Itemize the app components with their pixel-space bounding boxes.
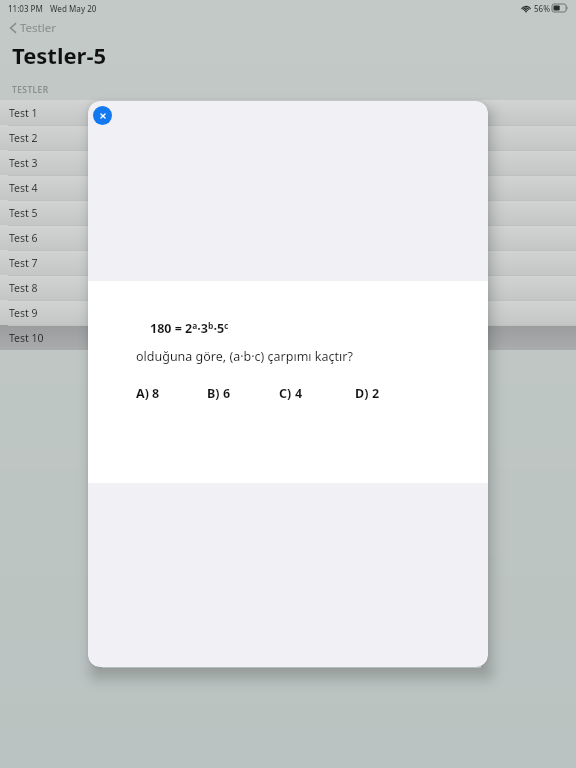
button[interactable]: Close [93, 106, 112, 125]
staticText: A) [136, 385, 149, 402]
staticText: 56% [534, 3, 550, 14]
staticText: Testler [20, 20, 56, 36]
staticText: Test 6 [9, 231, 38, 245]
button[interactable]: Test 3 [0, 150, 576, 175]
staticText: Test 10 [9, 331, 44, 345]
button[interactable]: Testler [6, 17, 56, 39]
button[interactable]: C) [279, 385, 303, 402]
button[interactable]: Test 2 [0, 125, 576, 150]
staticText: Test 7 [9, 256, 38, 270]
staticText: C) [279, 385, 292, 402]
button[interactable]: Test 7 [0, 250, 576, 275]
staticText: TESTLER [12, 84, 49, 96]
button[interactable]: Test 8 [0, 275, 576, 300]
staticText: Wed May 20 [50, 3, 97, 14]
button[interactable]: Test 6 [0, 225, 576, 250]
staticText: Test 9 [9, 306, 38, 320]
staticText: Test 3 [9, 156, 38, 170]
staticText: Test 2 [9, 131, 38, 145]
staticText: Test 8 [9, 281, 38, 295]
staticText: 180 = 2a·3b·5c [150, 320, 229, 337]
staticText: olduğuna göre, (a·b·c) çarpımı kaçtır? [136, 348, 353, 365]
staticText: 4 [295, 385, 303, 402]
staticText: 6 [223, 385, 231, 402]
staticText: Testler-5 [12, 40, 107, 70]
button[interactable]: D) [355, 385, 380, 402]
button[interactable]: Test 5 [0, 200, 576, 225]
staticText: Test 4 [9, 181, 38, 195]
button[interactable]: Test 10 [0, 325, 576, 350]
button[interactable]: B) [207, 385, 231, 402]
staticText: 11:03 PM [8, 3, 43, 14]
staticText: Test 5 [9, 206, 38, 220]
button[interactable]: Test 1 [0, 100, 576, 125]
staticText: B) [207, 385, 220, 402]
button[interactable]: Test 4 [0, 175, 576, 200]
staticText: 2 [372, 385, 380, 402]
button[interactable]: A) [136, 385, 160, 402]
staticText: Test 1 [9, 106, 38, 120]
button[interactable]: Test 9 [0, 300, 576, 325]
staticText: 8 [152, 385, 160, 402]
staticText: D) [355, 385, 369, 402]
